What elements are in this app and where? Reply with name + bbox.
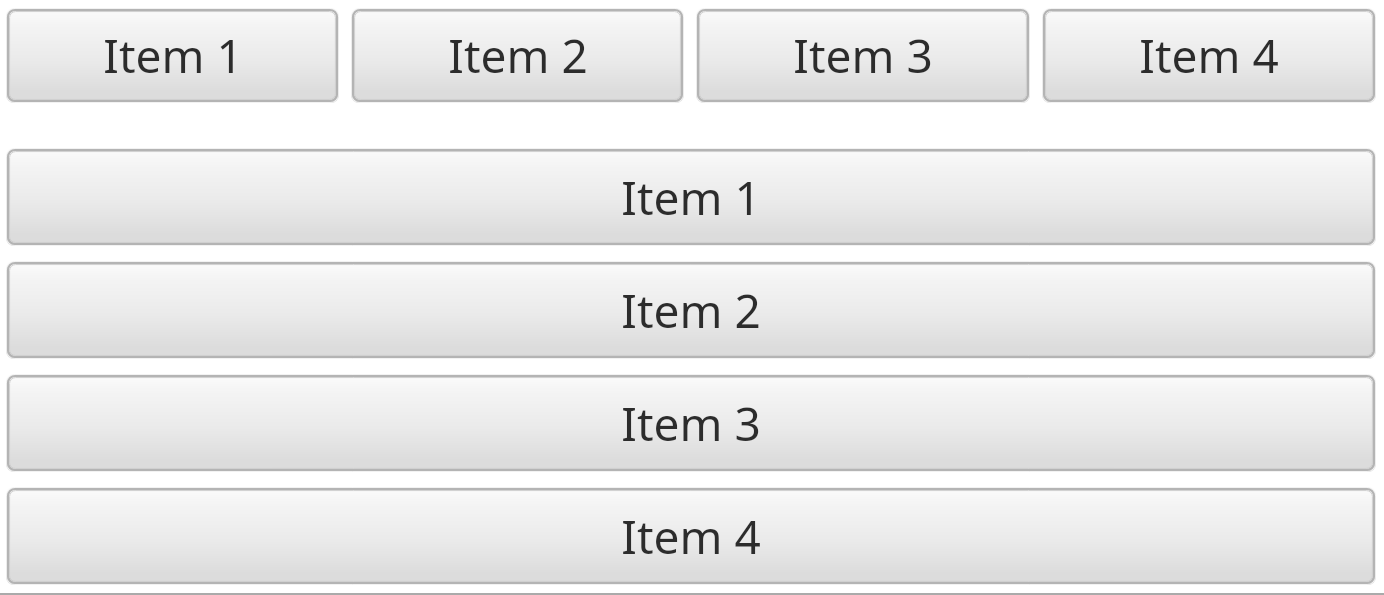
staticText: Item 4 bbox=[1139, 24, 1279, 87]
button[interactable]: Item 4 bbox=[6, 487, 1376, 585]
button[interactable]: Item 2 bbox=[351, 8, 684, 103]
button[interactable]: Item 1 bbox=[6, 8, 339, 103]
button[interactable]: Item 1 bbox=[6, 148, 1376, 246]
staticText: Item 1 bbox=[621, 166, 761, 229]
button[interactable]: Item 2 bbox=[6, 261, 1376, 359]
staticText: Item 3 bbox=[793, 24, 933, 87]
button[interactable]: Item 4 bbox=[1042, 8, 1376, 103]
button[interactable]: Item 3 bbox=[6, 374, 1376, 472]
button[interactable]: Item 3 bbox=[696, 8, 1030, 103]
staticText: Item 3 bbox=[621, 392, 761, 455]
staticText: Item 2 bbox=[621, 279, 761, 342]
staticText: Item 2 bbox=[448, 24, 588, 87]
staticText: Item 4 bbox=[621, 505, 761, 568]
staticText: Item 1 bbox=[103, 24, 243, 87]
